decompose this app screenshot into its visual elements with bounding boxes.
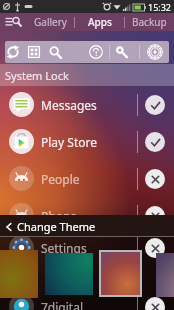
button[interactable]: Key <box>112 41 132 63</box>
button[interactable]: Grid view <box>24 41 44 63</box>
button[interactable]: Theme <box>0 250 38 298</box>
staticText: People <box>41 171 80 187</box>
staticText: 15:32 <box>148 1 172 13</box>
button[interactable]: Enabled <box>145 95 165 115</box>
staticText: Gallery <box>34 15 67 29</box>
staticText: Change Theme <box>17 219 96 234</box>
staticText: 7digital <box>41 299 83 310</box>
button[interactable]: Change Theme <box>0 215 174 237</box>
button[interactable]: Gallery <box>26 13 74 31</box>
button[interactable]: Disabled <box>145 238 165 258</box>
button[interactable]: Help <box>86 41 106 63</box>
staticText: Phone <box>41 208 78 224</box>
button[interactable]: People <box>0 160 174 197</box>
staticText: Backup <box>132 15 167 29</box>
button[interactable]: Refresh <box>5 41 23 63</box>
button[interactable]: Phone <box>0 197 174 234</box>
button[interactable]: Backup <box>125 13 174 31</box>
button[interactable]: Settings <box>0 229 174 266</box>
button[interactable]: Theme <box>45 253 93 295</box>
button[interactable]: Play Store <box>0 123 174 160</box>
staticText: Settings <box>41 240 87 256</box>
button[interactable]: Disabled <box>145 169 165 189</box>
button[interactable]: Disabled <box>145 297 165 310</box>
button[interactable]: Theme <box>99 250 142 297</box>
button[interactable]: Messages <box>0 86 174 123</box>
staticText: Play Store <box>41 134 97 150</box>
button[interactable]: Disabled <box>145 206 165 226</box>
staticText: Messages <box>41 97 97 113</box>
staticText: Apps <box>88 15 112 29</box>
button[interactable]: Settings <box>145 41 165 63</box>
button[interactable]: 7digital <box>0 288 174 310</box>
button[interactable]: Search <box>45 41 65 63</box>
staticText: System Lock <box>5 68 69 83</box>
button[interactable]: Menu <box>0 13 26 31</box>
button[interactable]: Enabled <box>145 132 165 152</box>
button[interactable]: Theme <box>156 253 174 297</box>
button[interactable]: Apps <box>75 13 124 31</box>
